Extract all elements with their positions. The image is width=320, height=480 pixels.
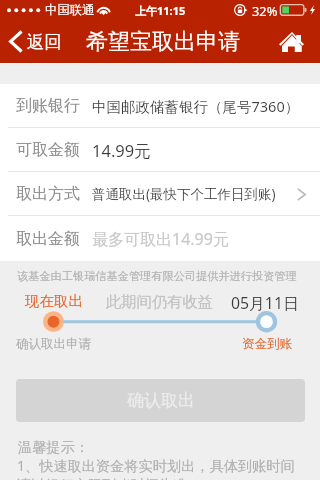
staticText: 14.99元	[92, 139, 151, 162]
staticText: 温馨提示：	[18, 438, 89, 456]
button[interactable]: 到账银行	[0, 84, 320, 128]
button[interactable]: 取出方式	[0, 172, 320, 216]
staticText: 上午11:15	[135, 3, 186, 18]
staticText: 普通取出(最快下个工作日到账)	[92, 185, 276, 203]
staticText: 取出方式	[16, 184, 80, 204]
button[interactable]: 取出金额	[0, 216, 320, 261]
button[interactable]: 返回	[9, 20, 62, 63]
staticText: 资金到账	[242, 336, 292, 352]
button[interactable]: 可取金额	[0, 128, 320, 172]
staticText: 确认取出申请	[16, 336, 91, 352]
staticText: 到账银行	[16, 96, 80, 116]
staticText: 32%	[252, 2, 278, 19]
staticText: 中国联通	[45, 2, 95, 18]
staticText: 确认取出	[127, 390, 195, 411]
staticText: 现在取出	[25, 292, 83, 310]
staticText: 返回	[27, 31, 62, 53]
staticText: 1、快速取出资金将实时划出，具体到账时间 请以银行实际到账时间为准	[17, 456, 295, 480]
button[interactable]: 确认取出	[16, 379, 305, 422]
staticText: 此期间仍有收益	[106, 292, 214, 311]
staticText: 该基金由工银瑞信基金管理有限公司提供并进行投资管理	[17, 269, 297, 283]
staticText: 05月11日	[231, 292, 299, 314]
staticText: 最多可取出14.99元	[92, 228, 229, 250]
staticText: 中国邮政储蓄银行（尾号7360）	[92, 96, 300, 116]
staticText: 希望宝取出申请	[86, 28, 240, 56]
staticText: 可取金额	[16, 140, 80, 160]
staticText: 取出金额	[16, 229, 80, 249]
button[interactable]: Home	[263, 20, 320, 63]
